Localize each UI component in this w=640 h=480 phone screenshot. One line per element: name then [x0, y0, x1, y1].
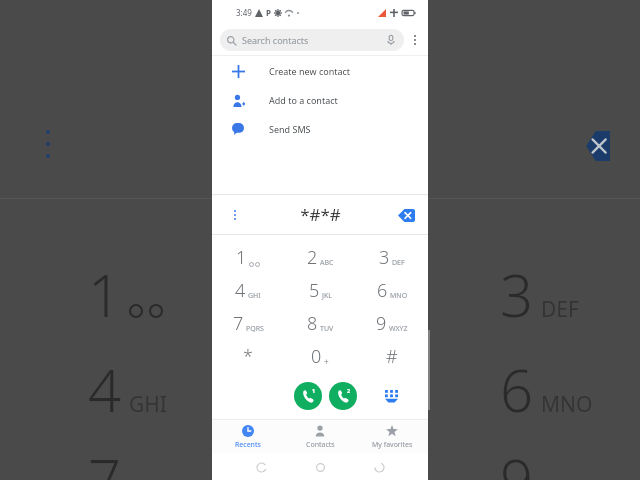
staticText: * — [243, 344, 253, 369]
button[interactable]: Call with SIM 1 — [294, 382, 322, 410]
button[interactable]: Add to a contact — [212, 85, 428, 114]
staticText: GHI — [248, 291, 261, 301]
button[interactable]: 4 — [212, 274, 284, 307]
staticText: TUV — [320, 324, 334, 334]
button[interactable]: Dialpad options — [224, 204, 246, 226]
staticText: P — [266, 7, 271, 18]
staticText: DEF — [392, 258, 405, 268]
button[interactable]: Contacts — [284, 420, 356, 454]
staticText: # — [386, 344, 398, 369]
staticText: My favorites — [372, 440, 413, 450]
button[interactable]: Create new contact — [212, 56, 428, 85]
button[interactable]: 3 — [356, 241, 428, 274]
staticText: 7 — [88, 440, 122, 480]
staticText: 3:49 — [236, 7, 252, 18]
button[interactable]: Back — [369, 457, 389, 477]
staticText: *#*# — [300, 203, 341, 226]
staticText: MNO — [541, 390, 593, 419]
staticText: + — [324, 356, 329, 367]
staticText: 7 — [233, 311, 244, 336]
button[interactable]: Send SMS — [212, 114, 428, 143]
staticText: 6 — [377, 278, 388, 303]
staticText: ABC — [320, 258, 334, 268]
button[interactable]: 6 — [356, 274, 428, 307]
staticText: Recents — [235, 440, 261, 450]
staticText: 9 — [500, 440, 534, 480]
button[interactable]: # — [356, 340, 428, 373]
button[interactable]: Backspace — [394, 203, 418, 227]
button[interactable]: 0 — [284, 340, 356, 373]
staticText: JKL — [322, 291, 332, 301]
staticText: 3 — [500, 255, 534, 334]
button[interactable]: More options — [404, 29, 426, 51]
button[interactable]: My favorites — [356, 420, 428, 454]
button[interactable]: Search contacts — [220, 29, 404, 51]
staticText: 8 — [307, 311, 318, 336]
button[interactable]: 7 — [212, 307, 284, 340]
button[interactable]: 8 — [284, 307, 356, 340]
staticText: 4 — [235, 278, 246, 303]
other: Voice search — [385, 34, 397, 46]
staticText: 1 — [312, 387, 316, 394]
button[interactable]: Home — [310, 457, 330, 477]
staticText: Contacts — [306, 440, 335, 450]
button[interactable]: Call with SIM 2 — [329, 382, 357, 410]
staticText: 2 — [347, 387, 351, 394]
staticText: 9 — [376, 311, 387, 336]
button[interactable]: Recent apps — [251, 457, 271, 477]
staticText: 3 — [379, 245, 390, 270]
staticText: 1 — [88, 255, 122, 334]
staticText: 5 — [309, 278, 320, 303]
staticText: DEF — [541, 295, 579, 324]
staticText: Send SMS — [269, 123, 311, 135]
button[interactable]: 9 — [356, 307, 428, 340]
staticText: 0 — [311, 344, 322, 369]
staticText: 2 — [307, 245, 318, 270]
staticText: GHI — [129, 390, 167, 419]
staticText: 4 — [88, 350, 122, 429]
button[interactable]: * — [212, 340, 284, 373]
button[interactable]: 2 — [284, 241, 356, 274]
staticText: Add to a contact — [269, 94, 338, 106]
button[interactable]: Hide dialpad — [379, 384, 403, 408]
button[interactable]: 5 — [284, 274, 356, 307]
staticText: MNO — [390, 291, 408, 301]
staticText: Search contacts — [242, 34, 309, 46]
staticText: 6 — [500, 350, 534, 429]
button[interactable]: Recents — [212, 420, 284, 454]
staticText: WXYZ — [389, 324, 408, 334]
staticText: Create new contact — [269, 65, 351, 77]
button[interactable]: 1 — [212, 241, 284, 274]
staticText: PQRS — [246, 324, 264, 334]
staticText: 1 — [236, 245, 247, 270]
